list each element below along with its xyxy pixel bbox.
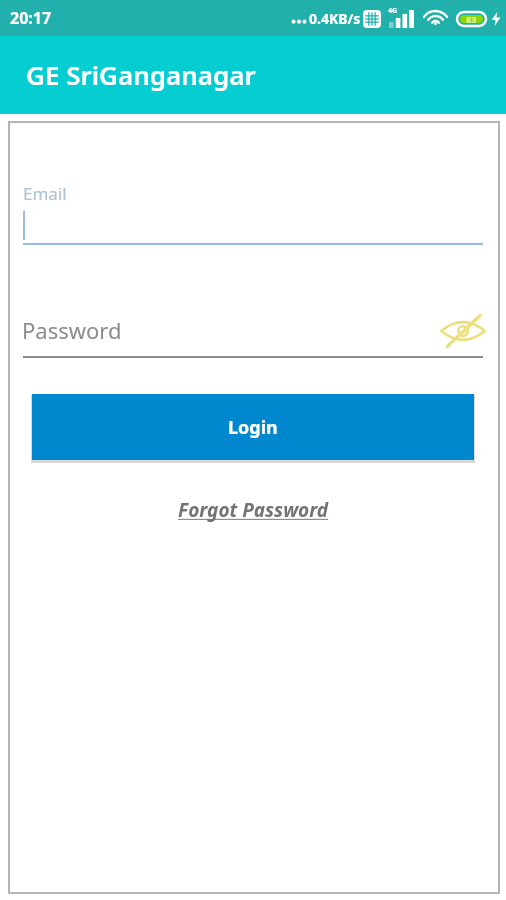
button[interactable]: Password (23, 308, 483, 358)
staticText: Password (22, 315, 122, 345)
staticText: 0.4KB/s (309, 9, 361, 28)
staticText: GE SriGanganagar (26, 57, 256, 92)
button[interactable]: Show password (433, 305, 493, 357)
staticText: 20:17 (10, 7, 52, 29)
button[interactable]: Email (23, 176, 483, 245)
staticText: 4G (388, 6, 398, 16)
staticText: 83 (466, 13, 477, 25)
staticText: Email (23, 182, 67, 205)
button[interactable]: Forgot Password (174, 493, 333, 527)
staticText: Login (228, 415, 278, 440)
button[interactable]: Login (32, 394, 474, 460)
